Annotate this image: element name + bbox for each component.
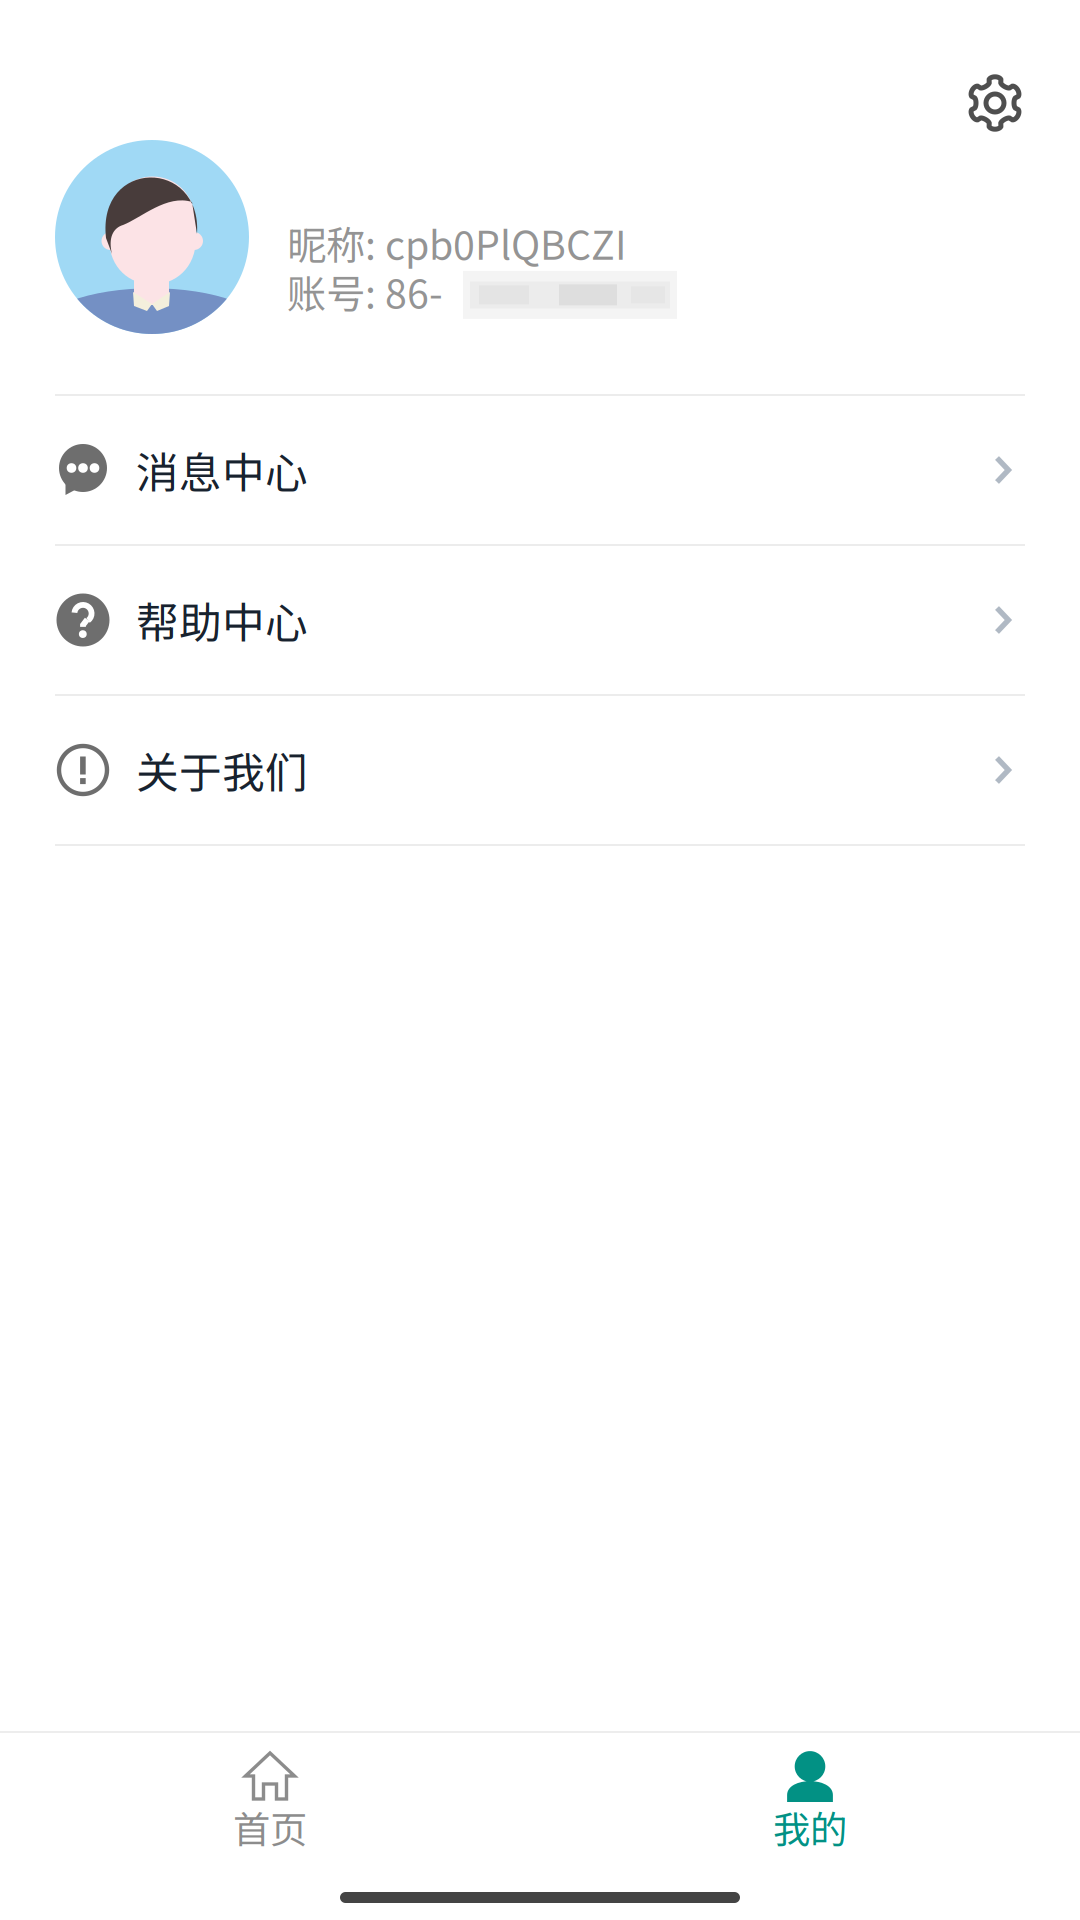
button[interactable]: 消息中心 xyxy=(0,396,1080,546)
button[interactable]: Settings xyxy=(958,66,1032,140)
staticText: 昵称: cpb0PlQBCZI xyxy=(287,214,627,271)
staticText: 消息中心 xyxy=(136,439,308,501)
button[interactable]: 我的 xyxy=(540,1733,1080,1853)
button[interactable]: 帮助中心 xyxy=(0,546,1080,696)
staticText: 关于我们 xyxy=(136,739,308,801)
staticText: 首页 xyxy=(233,1800,307,1854)
button[interactable]: 首页 xyxy=(0,1733,540,1853)
button[interactable]: 关于我们 xyxy=(0,696,1080,846)
staticText: 账号: 86- xyxy=(287,263,443,320)
staticText: 帮助中心 xyxy=(136,589,308,651)
staticText: 我的 xyxy=(773,1800,847,1854)
